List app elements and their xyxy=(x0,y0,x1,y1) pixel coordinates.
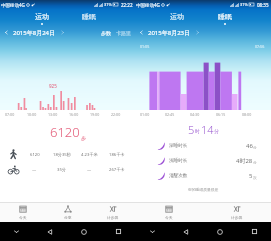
button[interactable]: Back xyxy=(169,222,203,241)
staticText: 步数 xyxy=(101,30,111,36)
staticText: 22:22 xyxy=(121,2,133,8)
button[interactable]: Previous day xyxy=(139,30,144,35)
staticText: 您的睡眠质量很差 xyxy=(188,187,219,192)
staticText: 925 xyxy=(49,83,57,89)
staticText: 5 xyxy=(188,122,195,134)
staticText: 08:00 xyxy=(242,112,252,117)
staticText: 07:56 xyxy=(255,44,265,49)
staticText: 浅睡时长 xyxy=(169,158,188,164)
staticText: 6120 xyxy=(30,152,40,158)
staticText: 分 xyxy=(253,145,257,150)
staticText: 今天 xyxy=(19,215,27,220)
staticText: 07:00 xyxy=(5,112,15,117)
button[interactable]: 清醒次数 xyxy=(157,168,257,183)
staticText: 中国移动4G xyxy=(1,2,25,8)
button[interactable]: 运动 xyxy=(153,9,201,25)
staticText: 2015年8月24日 xyxy=(13,29,56,37)
button[interactable]: 今天 xyxy=(135,203,203,222)
button[interactable]: Previous day xyxy=(4,30,9,35)
staticText: 卡路里 xyxy=(116,30,131,36)
staticText: 2015年8月23日 xyxy=(148,29,191,37)
staticText: 13:00 xyxy=(48,112,58,117)
staticText: 睡眠 xyxy=(82,12,96,21)
button[interactable]: 睡眠 xyxy=(201,9,249,25)
staticText: 分 xyxy=(253,160,257,165)
staticText: 计步器 xyxy=(231,215,243,220)
staticText: 清醒次数 xyxy=(169,173,188,179)
staticText: 中国移动4G xyxy=(136,2,160,8)
staticText: — xyxy=(32,167,37,173)
button[interactable]: 步数 xyxy=(101,30,111,36)
staticText: 01:05 xyxy=(140,44,150,49)
button[interactable]: 卡路里 xyxy=(116,30,131,36)
staticText: 31% xyxy=(104,2,112,7)
staticText: 08:35 xyxy=(257,2,269,8)
button[interactable]: 睡眠 xyxy=(65,9,113,25)
staticText: 计步器 xyxy=(107,215,119,220)
button[interactable]: Home xyxy=(203,222,237,241)
staticText: — xyxy=(87,167,92,173)
staticText: 步 xyxy=(81,135,86,141)
staticText: 46 xyxy=(246,142,253,150)
button[interactable]: 深睡时长 xyxy=(157,138,257,153)
staticText: 22:00 xyxy=(111,112,121,117)
button[interactable]: Next day xyxy=(60,30,65,35)
button[interactable]: Hide keyboard xyxy=(0,222,33,241)
button[interactable]: Recent apps xyxy=(237,222,271,241)
staticText: 10:00 xyxy=(27,112,37,117)
button[interactable]: 运动 xyxy=(18,9,65,25)
staticText: 18分35秒 xyxy=(53,152,71,158)
staticText: 运动 xyxy=(35,12,49,21)
staticText: 186千卡 xyxy=(109,152,125,158)
button[interactable]: 6120 xyxy=(8,147,131,162)
button[interactable]: Next day xyxy=(195,30,200,35)
staticText: 35分 xyxy=(57,167,66,173)
button[interactable]: — xyxy=(8,162,131,177)
button[interactable]: Recent apps xyxy=(101,222,135,241)
staticText: 16:00 xyxy=(69,112,79,117)
button[interactable]: 计步器 xyxy=(203,203,271,222)
staticText: 14 xyxy=(201,122,214,134)
button[interactable]: Hide keyboard xyxy=(135,222,169,241)
button[interactable]: 浅睡时长 xyxy=(157,153,257,168)
staticText: 今天 xyxy=(165,215,173,220)
staticText: 04:30 xyxy=(190,112,200,117)
button[interactable]: 计步器 xyxy=(90,203,135,222)
button[interactable]: 今天 xyxy=(0,203,45,222)
staticText: 深睡时长 xyxy=(169,143,188,149)
staticText: 次 xyxy=(253,175,257,180)
staticText: 02:45 xyxy=(165,112,175,117)
staticText: 01:00 xyxy=(140,112,150,117)
staticText: 4.23千米 xyxy=(81,152,98,158)
staticText: 267千卡 xyxy=(109,167,125,173)
staticText: 分享 xyxy=(64,215,72,220)
staticText: 5 xyxy=(249,172,253,180)
staticText: 分 xyxy=(214,128,219,134)
button[interactable]: Home xyxy=(67,222,101,241)
staticText: 睡眠 xyxy=(218,12,232,21)
staticText: 31% xyxy=(240,2,248,7)
button[interactable]: Back xyxy=(33,222,67,241)
staticText: 4时28 xyxy=(236,157,253,165)
staticText: 运动 xyxy=(170,12,184,21)
button[interactable]: 分享 xyxy=(45,203,90,222)
staticText: 19:00 xyxy=(90,112,100,117)
staticText: 时 xyxy=(195,128,200,134)
staticText: 06:15 xyxy=(216,112,226,117)
staticText: 6120 xyxy=(50,123,80,141)
